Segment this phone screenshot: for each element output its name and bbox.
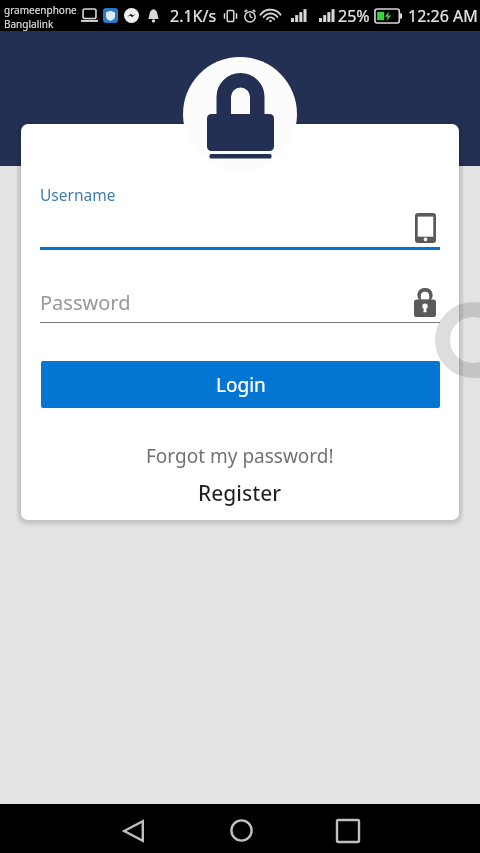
staticText: 2.1K/s	[170, 5, 217, 27]
button[interactable]: Password	[40, 284, 440, 323]
button[interactable]: Register	[21, 476, 459, 510]
staticText: Banglalink	[4, 17, 54, 31]
button[interactable]: Password visibility	[414, 288, 436, 317]
staticText: Username	[40, 184, 116, 205]
staticText: Forgot my password!	[146, 443, 334, 469]
button[interactable]: Forgot my password!	[21, 440, 459, 472]
button[interactable]: Mobile number	[415, 213, 436, 243]
button[interactable]: Recent apps	[291, 804, 405, 853]
button[interactable]: Home	[184, 804, 298, 853]
staticText: Login	[216, 372, 266, 398]
staticText: Register	[198, 479, 282, 508]
staticText: Password	[40, 289, 131, 316]
button[interactable]: Back	[76, 804, 190, 853]
button[interactable]: Username	[40, 179, 440, 250]
button[interactable]: Login	[41, 361, 440, 408]
staticText: grameenphone	[4, 3, 77, 17]
staticText: 12:26 AM	[408, 5, 478, 27]
staticText: 25%	[338, 5, 370, 27]
